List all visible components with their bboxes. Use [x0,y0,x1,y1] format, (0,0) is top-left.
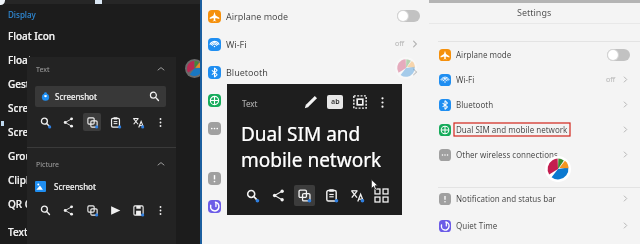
staticText: mobile network [241,147,382,173]
button[interactable]: Collapse picture [153,156,169,172]
staticText: Notification and status bar [456,193,556,204]
button[interactable]: Search [36,113,54,131]
button[interactable]: Gest [0,74,60,94]
staticText: Bluetooth [456,99,494,110]
staticText: Quiet Time [456,220,498,231]
button[interactable]: Save [129,201,147,219]
button[interactable]: Search [36,201,54,219]
button[interactable]: Grou [0,146,60,166]
button[interactable]: Airplane mode [429,42,640,67]
staticText: Text [36,65,50,75]
staticText: Airplane mode [226,10,289,22]
button[interactable]: Other wireless connections [429,142,640,167]
staticText: Screenshot [54,181,96,192]
button[interactable]: Share [268,185,289,206]
button[interactable]: Copy [83,201,101,219]
button[interactable]: Share [59,113,77,131]
button[interactable]: Translate [129,113,147,131]
staticText: Display [8,9,36,20]
staticText: Dual SIM and mobile network [456,124,568,135]
button[interactable]: Bluetooth [429,92,640,117]
staticText: Text [8,225,28,239]
button[interactable]: Select all [350,92,370,112]
button[interactable]: Copy [294,185,315,206]
button[interactable]: Float Icon [0,26,60,46]
button[interactable]: Spell check [327,95,343,109]
staticText: Bluetooth [226,66,268,78]
staticText: QR C [8,197,32,211]
staticText: Text [242,98,258,109]
button[interactable]: Screenshot [35,86,166,107]
button[interactable] [200,192,429,220]
button[interactable]: Scre [0,98,60,118]
button[interactable]: Scre [0,122,60,142]
staticText: Picture [36,160,59,170]
staticText: Float [8,53,32,67]
button[interactable]: Clipb [0,170,60,190]
button[interactable]: More options [151,113,169,131]
button[interactable]: Text [0,222,60,242]
button[interactable] [200,86,429,114]
button[interactable]: Quiet Time [429,213,640,238]
button[interactable]: Wi-Fi [429,67,640,92]
button[interactable]: Paste [321,185,342,206]
button[interactable]: Paste [106,113,124,131]
button[interactable]: More options [372,92,392,112]
button[interactable]: Translate [347,185,368,206]
staticText: Other wireless connections [456,149,558,160]
button[interactable]: Float [0,50,60,70]
button[interactable]: QR C [0,194,60,214]
button[interactable] [200,164,429,192]
staticText: Wi-Fi [226,38,247,50]
staticText: Clipb [8,173,33,187]
button[interactable]: Edit [301,92,321,112]
staticText: Gest [8,77,30,91]
button[interactable]: Bluetooth [200,58,429,86]
staticText: off [395,39,405,49]
button[interactable]: Share [59,201,77,219]
button[interactable]: Display [0,4,60,24]
staticText: Scre [8,101,29,115]
button[interactable] [200,114,429,142]
staticText: Settings [517,6,552,18]
staticText: ab [331,97,340,107]
staticText: Wi-Fi [456,74,475,85]
button[interactable]: Send [106,201,124,219]
button[interactable]: Copy [83,113,101,131]
staticText: Screenshot [55,91,97,102]
button[interactable]: Apps [371,185,392,206]
button[interactable]: Notification and status bar [429,186,640,211]
staticText: Float Icon [8,29,56,43]
staticText: Dual SIM and [241,121,361,147]
button[interactable]: Wi-Fi [200,30,429,58]
button[interactable]: Airplane mode toggle [607,49,630,61]
button[interactable]: Airplane mode [200,2,429,30]
staticText: Grou [8,149,32,163]
staticText: Scre [8,125,29,139]
button[interactable]: Airplane mode toggle [397,10,420,22]
staticText: Airplane mode [456,49,512,60]
button[interactable]: More options [151,201,169,219]
button[interactable]: Dual SIM and mobile network [429,117,640,142]
button[interactable]: Collapse text [153,61,169,77]
staticText: off [606,75,616,85]
button[interactable]: Search [242,185,263,206]
button[interactable]: Screenshot [35,178,155,194]
